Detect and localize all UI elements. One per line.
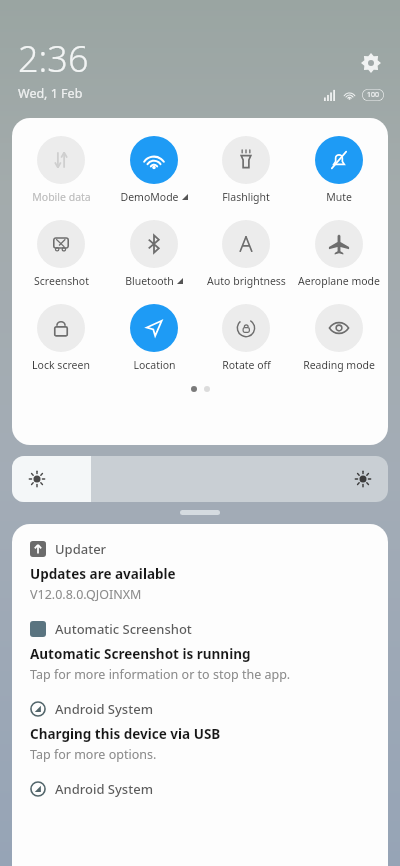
staticText: Wed, 1 Feb (18, 85, 83, 102)
button[interactable]: Lock screen (17, 304, 105, 372)
button[interactable]: Location (110, 304, 198, 372)
staticText: Mobile data (32, 190, 91, 204)
staticText: Mute (326, 190, 352, 204)
button[interactable]: Flashlight (202, 136, 290, 204)
staticText: Automatic Screenshot is running (30, 645, 251, 663)
staticText: DemoMode (120, 190, 179, 204)
staticText: Aeroplane mode (298, 274, 380, 288)
staticText: Charging this device via USB (30, 725, 221, 743)
staticText: Auto brightness (207, 274, 286, 288)
button[interactable]: Auto brightness (202, 220, 290, 288)
staticText: Bluetooth (125, 274, 174, 288)
button[interactable]: Android System (30, 700, 370, 763)
button[interactable]: Bluetooth (110, 220, 198, 288)
staticText: 2:36 (18, 34, 89, 83)
staticText: Automatic Screenshot (55, 620, 192, 638)
staticText: Screenshot (34, 274, 89, 288)
staticText: Tap for more information or to stop the … (30, 666, 291, 683)
staticText: Rotate off (222, 358, 271, 372)
staticText: Location (133, 358, 176, 372)
staticText: V12.0.8.0.QJOINXM (30, 586, 142, 603)
button[interactable]: Mute (295, 136, 383, 204)
button[interactable]: Brightness (12, 456, 388, 502)
staticText: Android System (55, 780, 153, 798)
staticText: Tap for more options. (30, 746, 157, 763)
button[interactable]: Android System (30, 780, 370, 798)
button[interactable]: Mobile data (17, 136, 105, 204)
button[interactable]: DemoMode (110, 136, 198, 204)
button[interactable]: Automatic Screenshot (30, 620, 370, 683)
staticText: Reading mode (303, 358, 375, 372)
button[interactable]: Rotate off (202, 304, 290, 372)
staticText: Updater (55, 540, 107, 558)
button[interactable]: Screenshot (17, 220, 105, 288)
button[interactable]: Aeroplane mode (295, 220, 383, 288)
button[interactable]: Settings (358, 50, 384, 76)
button[interactable]: Updater (30, 540, 370, 603)
button[interactable]: Reading mode (295, 304, 383, 372)
staticText: Flashlight (222, 190, 270, 204)
staticText: Android System (55, 700, 153, 718)
staticText: Lock screen (32, 358, 90, 372)
staticText: 100 (367, 90, 380, 100)
staticText: Updates are available (30, 565, 176, 583)
